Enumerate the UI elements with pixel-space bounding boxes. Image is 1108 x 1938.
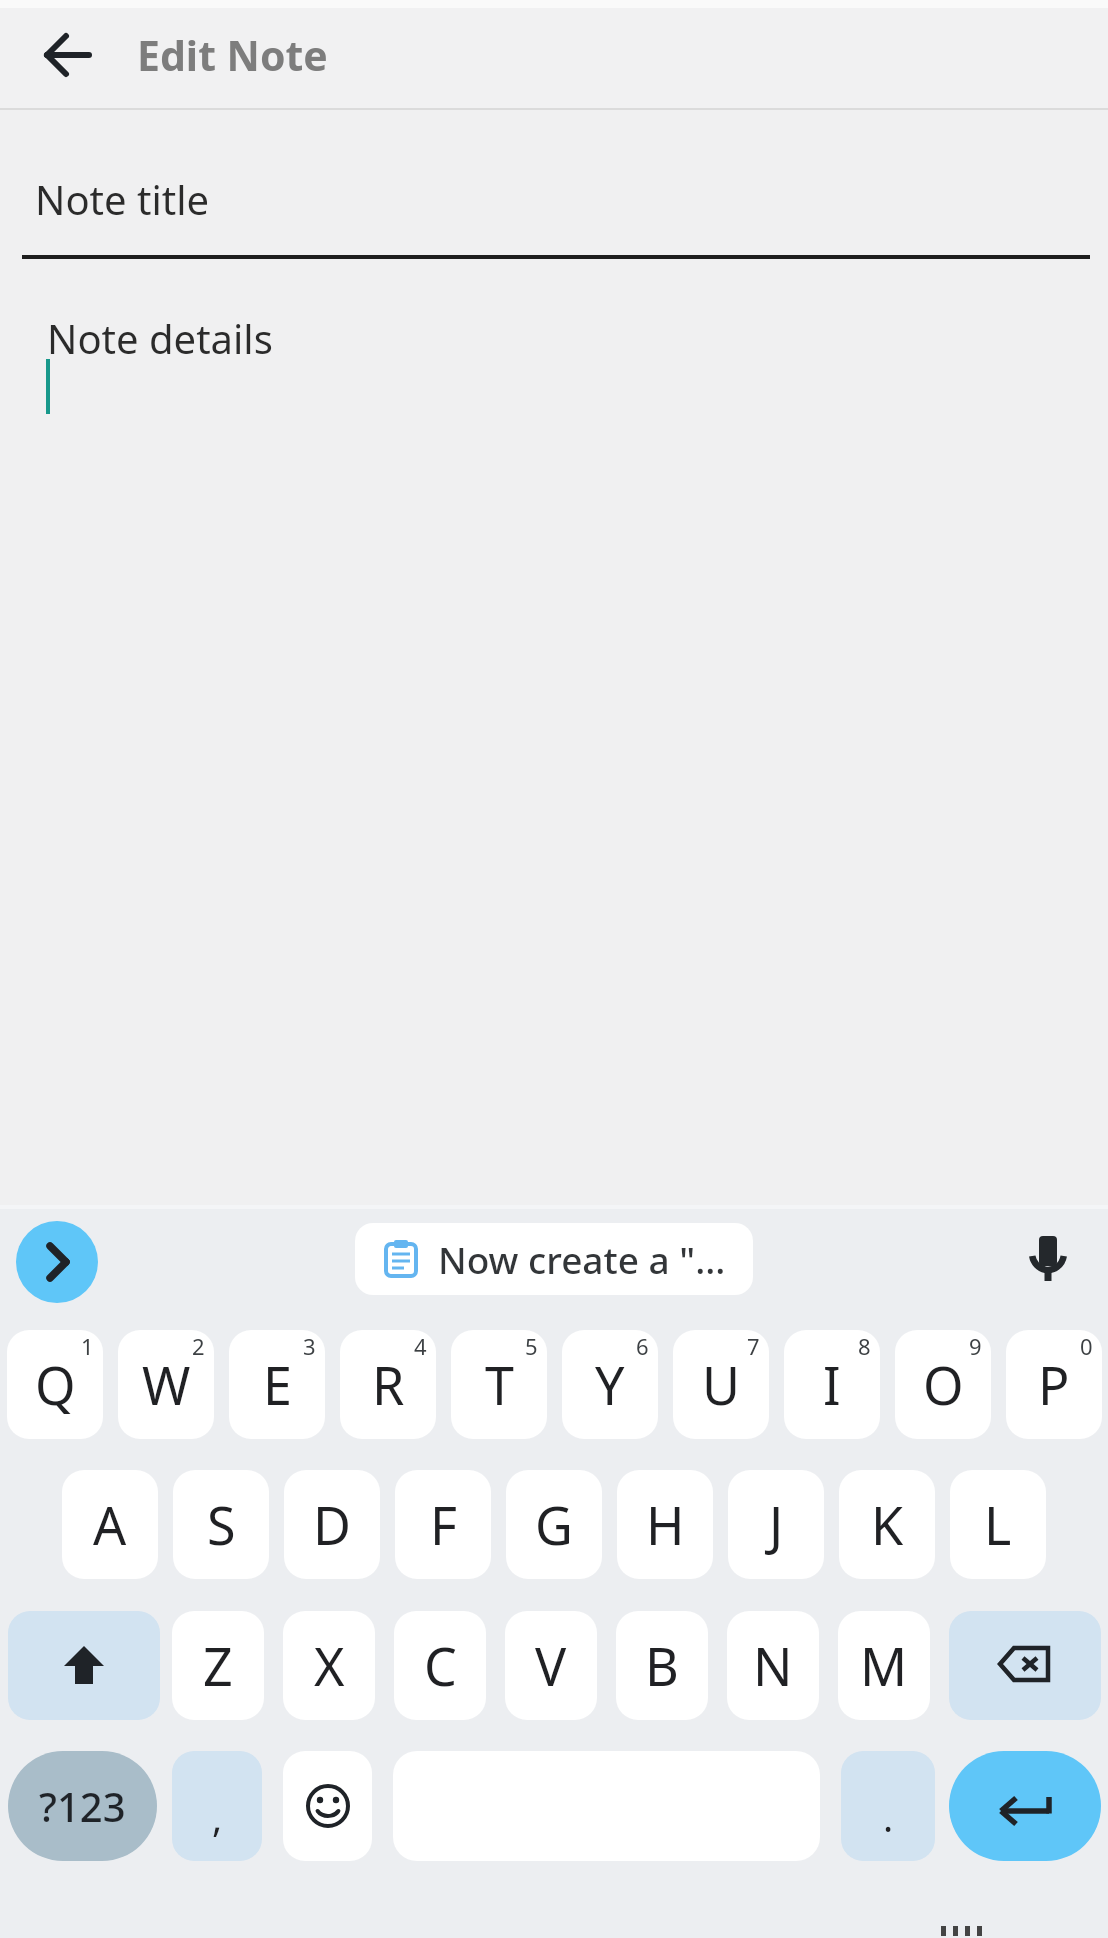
staticText: T (485, 1349, 514, 1420)
staticText: 7 (747, 1331, 760, 1361)
staticText: K (871, 1489, 904, 1560)
staticText: , (212, 1791, 223, 1843)
staticText: N (753, 1630, 793, 1701)
staticText: 9 (969, 1331, 982, 1361)
staticText: H (646, 1489, 685, 1560)
staticText: 2 (192, 1331, 205, 1361)
button[interactable]: Y (562, 1330, 658, 1439)
button[interactable] (24, 11, 112, 99)
staticText: Edit Note (137, 27, 328, 83)
staticText: B (645, 1630, 679, 1701)
button[interactable]: C (394, 1611, 486, 1720)
staticText: A (93, 1489, 127, 1560)
button[interactable]: , (172, 1751, 262, 1861)
staticText: Z (203, 1630, 233, 1701)
staticText: R (372, 1349, 405, 1420)
staticText: M (860, 1630, 908, 1701)
button[interactable]: F (395, 1470, 491, 1579)
staticText: Y (595, 1349, 625, 1420)
button[interactable]: R (340, 1330, 436, 1439)
button[interactable]: . (841, 1751, 935, 1861)
button[interactable]: Z (172, 1611, 264, 1720)
staticText: X (314, 1630, 345, 1701)
button[interactable]: X (283, 1611, 375, 1720)
staticText: ?123 (39, 1779, 126, 1833)
button[interactable]: ?123 (8, 1751, 157, 1861)
staticText: J (769, 1489, 784, 1560)
button[interactable]: M (838, 1611, 930, 1720)
staticText: D (313, 1489, 351, 1560)
button[interactable]: N (727, 1611, 819, 1720)
button[interactable]: L (950, 1470, 1046, 1579)
staticText: 0 (1080, 1331, 1093, 1361)
button[interactable]: G (506, 1470, 602, 1579)
button[interactable]: I (784, 1330, 880, 1439)
button[interactable]: W (118, 1330, 214, 1439)
button[interactable]: V (505, 1611, 597, 1720)
staticText: W (142, 1349, 191, 1420)
staticText: I (823, 1349, 841, 1420)
button[interactable] (8, 1611, 160, 1720)
staticText: 4 (414, 1331, 427, 1361)
staticText: 5 (525, 1331, 538, 1361)
staticText: U (702, 1349, 741, 1420)
staticText: E (263, 1349, 292, 1420)
staticText: F (430, 1489, 457, 1560)
button[interactable]: P (1006, 1330, 1102, 1439)
button[interactable]: K (839, 1470, 935, 1579)
button[interactable] (283, 1751, 372, 1861)
staticText: G (535, 1489, 573, 1560)
staticText: . (883, 1791, 894, 1843)
staticText: 6 (636, 1331, 649, 1361)
staticText: Note details (47, 311, 273, 365)
button[interactable] (949, 1751, 1101, 1861)
button[interactable]: U (673, 1330, 769, 1439)
staticText: Note title (35, 172, 210, 226)
staticText: P (1038, 1349, 1070, 1420)
staticText: 1 (81, 1331, 94, 1361)
button[interactable]: O (895, 1330, 991, 1439)
button[interactable]: J (728, 1470, 824, 1579)
staticText: V (535, 1630, 567, 1701)
staticText: Q (35, 1349, 76, 1420)
button[interactable] (949, 1611, 1101, 1720)
staticText: O (923, 1349, 964, 1420)
button[interactable]: S (173, 1470, 269, 1579)
button[interactable]: D (284, 1470, 380, 1579)
staticText: 3 (303, 1331, 316, 1361)
button[interactable]: T (451, 1330, 547, 1439)
button[interactable]: H (617, 1470, 713, 1579)
staticText: C (424, 1630, 457, 1701)
button[interactable]: E (229, 1330, 325, 1439)
button[interactable] (16, 1221, 98, 1303)
button[interactable] (1018, 1229, 1078, 1289)
staticText: 8 (858, 1331, 871, 1361)
staticText: L (984, 1489, 1012, 1560)
button[interactable]: Now create a "... (355, 1223, 753, 1295)
staticText: S (207, 1489, 236, 1560)
staticText: Now create a "... (438, 1234, 726, 1284)
button[interactable]: A (62, 1470, 158, 1579)
button[interactable]: B (616, 1611, 708, 1720)
button[interactable]: Q (7, 1330, 103, 1439)
